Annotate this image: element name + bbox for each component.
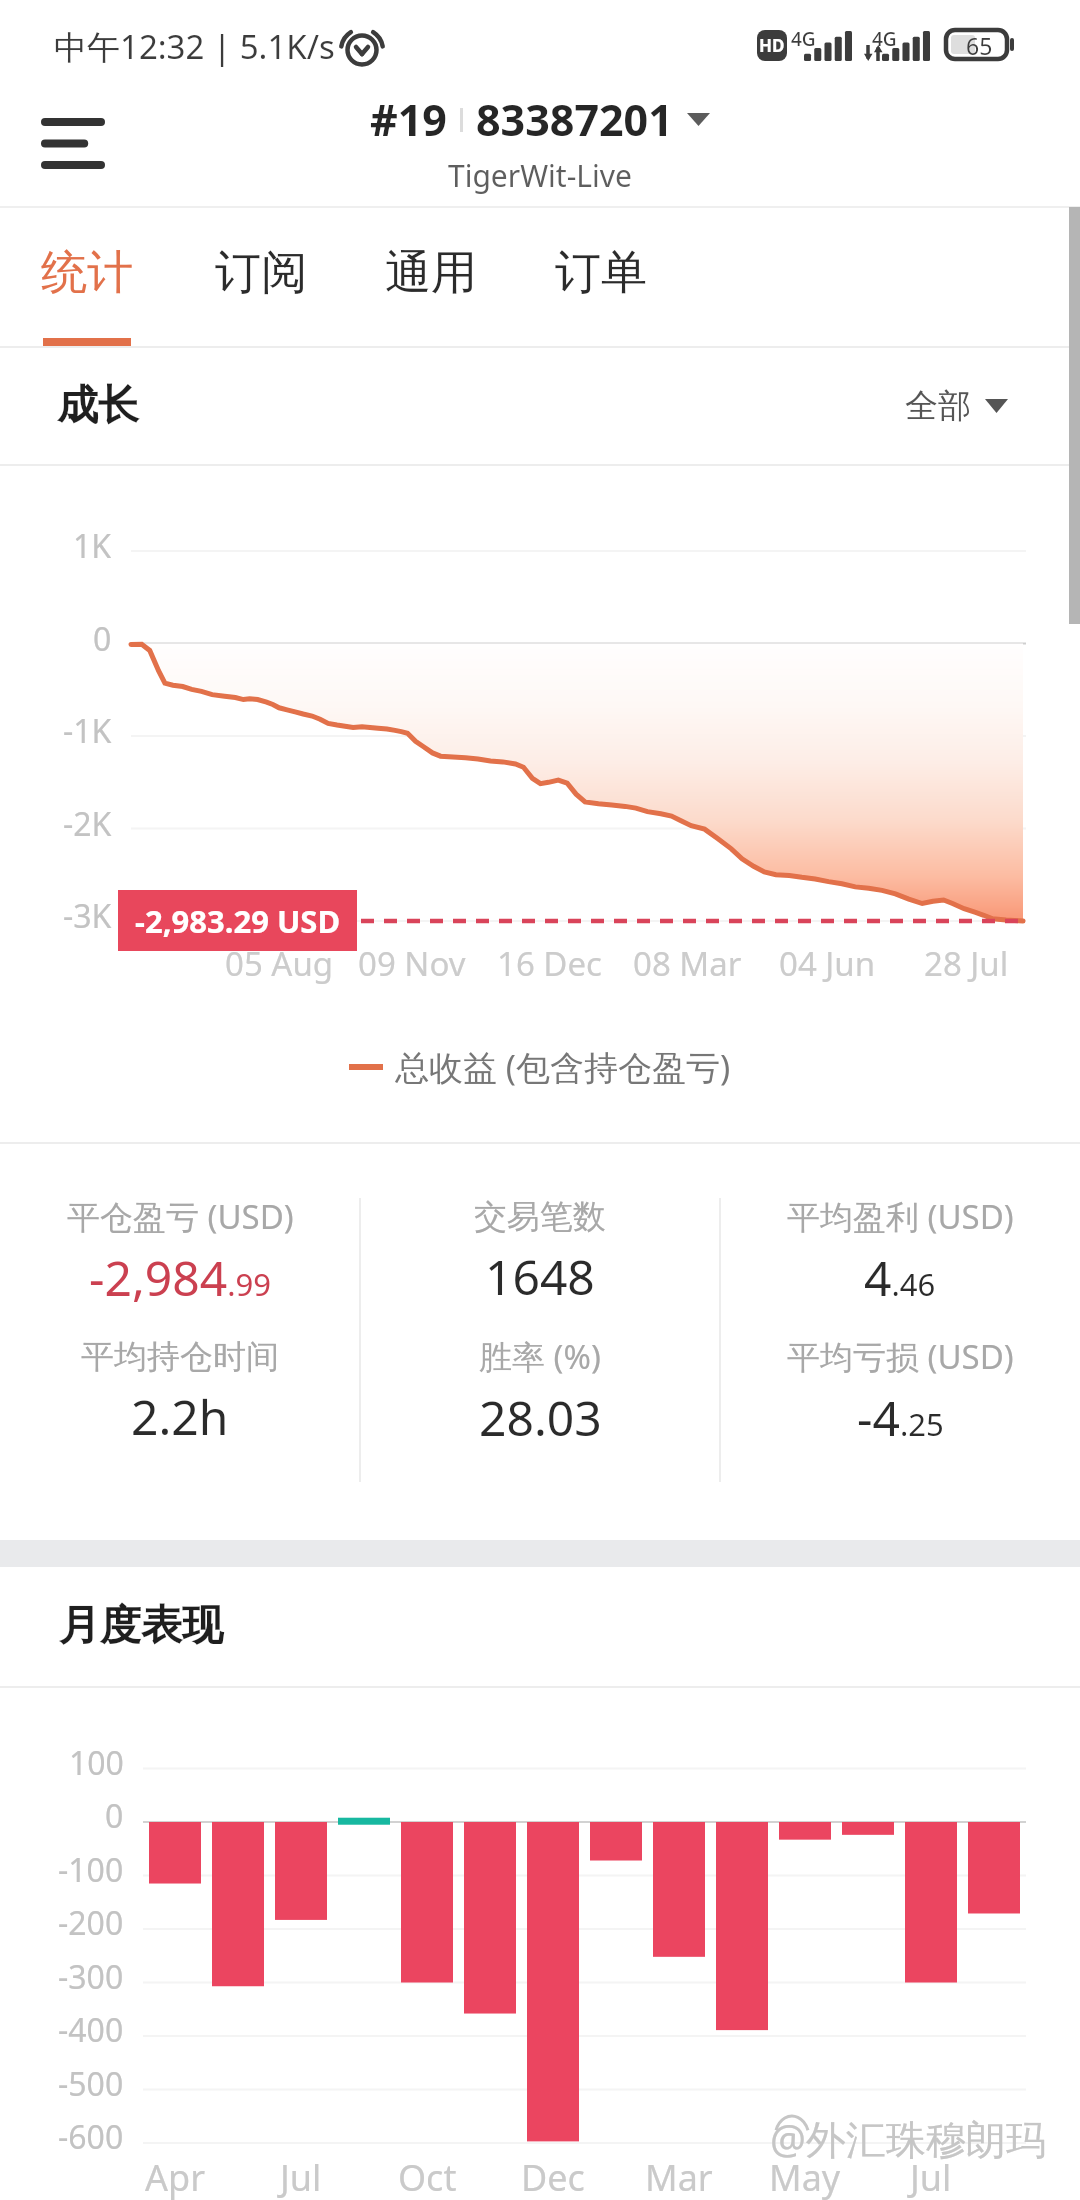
button[interactable]: 统计: [2, 208, 172, 346]
staticText: 全部: [905, 385, 971, 427]
staticText: -100: [58, 1848, 124, 1892]
staticText: 1K: [73, 524, 112, 568]
button[interactable]: 平均盈利 (USD): [720, 1182, 1080, 1322]
staticText: #19: [370, 90, 447, 149]
staticText: -2K: [63, 802, 112, 846]
staticText: -500: [58, 2062, 124, 2106]
staticText: -600: [58, 2115, 124, 2159]
staticText: 平均盈利 (USD): [787, 1194, 1014, 1239]
staticText: 28 Jul: [924, 941, 1009, 986]
staticText: 2.2h: [131, 1384, 229, 1449]
staticText: Mar: [645, 2153, 713, 2200]
staticText: 订阅: [176, 244, 346, 302]
staticText: 总收益 (包含持仓盈亏): [395, 1044, 731, 1090]
staticText: 09 Nov: [358, 941, 466, 986]
button[interactable]: 平均持仓时间: [0, 1322, 360, 1462]
staticText: 04 Jun: [779, 941, 876, 986]
staticText: -4.25: [857, 1385, 944, 1450]
staticText: 16 Dec: [497, 941, 602, 986]
staticText: 成长: [57, 380, 139, 432]
staticText: 65: [966, 30, 993, 59]
button[interactable]: 订单: [516, 208, 686, 346]
staticText: Jul: [280, 2153, 322, 2200]
button[interactable]: 胜率 (%): [360, 1322, 720, 1462]
staticText: -200: [58, 1901, 124, 1945]
staticText: Jul: [910, 2153, 952, 2200]
staticText: TigerWit-Live: [448, 155, 632, 196]
button[interactable]: Menu: [26, 96, 120, 190]
staticText: 4.46: [864, 1245, 936, 1310]
button[interactable]: 通用: [346, 208, 516, 346]
button[interactable]: 交易笔数: [360, 1182, 720, 1322]
staticText: 统计: [2, 244, 172, 302]
staticText: Apr: [145, 2153, 206, 2200]
staticText: 4G: [872, 26, 897, 52]
staticText: 0: [105, 1794, 124, 1838]
staticText: 28.03: [479, 1385, 602, 1450]
staticText: @外汇珠穆朗玛: [770, 2111, 1046, 2166]
staticText: 4G: [791, 26, 816, 52]
staticText: 胜率 (%): [479, 1334, 601, 1379]
staticText: 中午12:32 | 5.1K/s: [54, 24, 335, 69]
staticText: Oct: [398, 2153, 457, 2200]
button[interactable]: 平仓盈亏 (USD): [0, 1182, 360, 1322]
staticText: Dec: [521, 2153, 585, 2200]
staticText: HD: [759, 34, 785, 57]
staticText: -2,984.99: [89, 1245, 271, 1310]
staticText: 订单: [516, 244, 686, 302]
staticText: 100: [69, 1741, 124, 1785]
staticText: -1K: [63, 709, 112, 753]
staticText: 83387201: [476, 90, 673, 149]
staticText: -3K: [63, 894, 112, 938]
staticText: -300: [58, 1955, 124, 1999]
staticText: 交易笔数: [474, 1196, 606, 1238]
button[interactable]: 订阅: [176, 208, 346, 346]
staticText: 月度表现: [59, 1600, 223, 1652]
staticText: 平均持仓时间: [81, 1336, 279, 1378]
staticText: 平仓盈亏 (USD): [67, 1194, 294, 1239]
staticText: -400: [58, 2008, 124, 2052]
button[interactable]: 全部: [905, 368, 1045, 444]
button[interactable]: 平均亏损 (USD): [720, 1322, 1080, 1462]
staticText: -2,983.29 USD: [135, 900, 341, 942]
button[interactable]: #19: [364, 90, 716, 149]
staticText: 通用: [346, 244, 516, 302]
staticText: 08 Mar: [633, 941, 742, 986]
staticText: 0: [93, 617, 112, 661]
staticText: 平均亏损 (USD): [787, 1334, 1014, 1379]
staticText: 1648: [485, 1244, 595, 1309]
staticText: 05 Aug: [225, 941, 334, 986]
staticText: May: [769, 2153, 841, 2200]
